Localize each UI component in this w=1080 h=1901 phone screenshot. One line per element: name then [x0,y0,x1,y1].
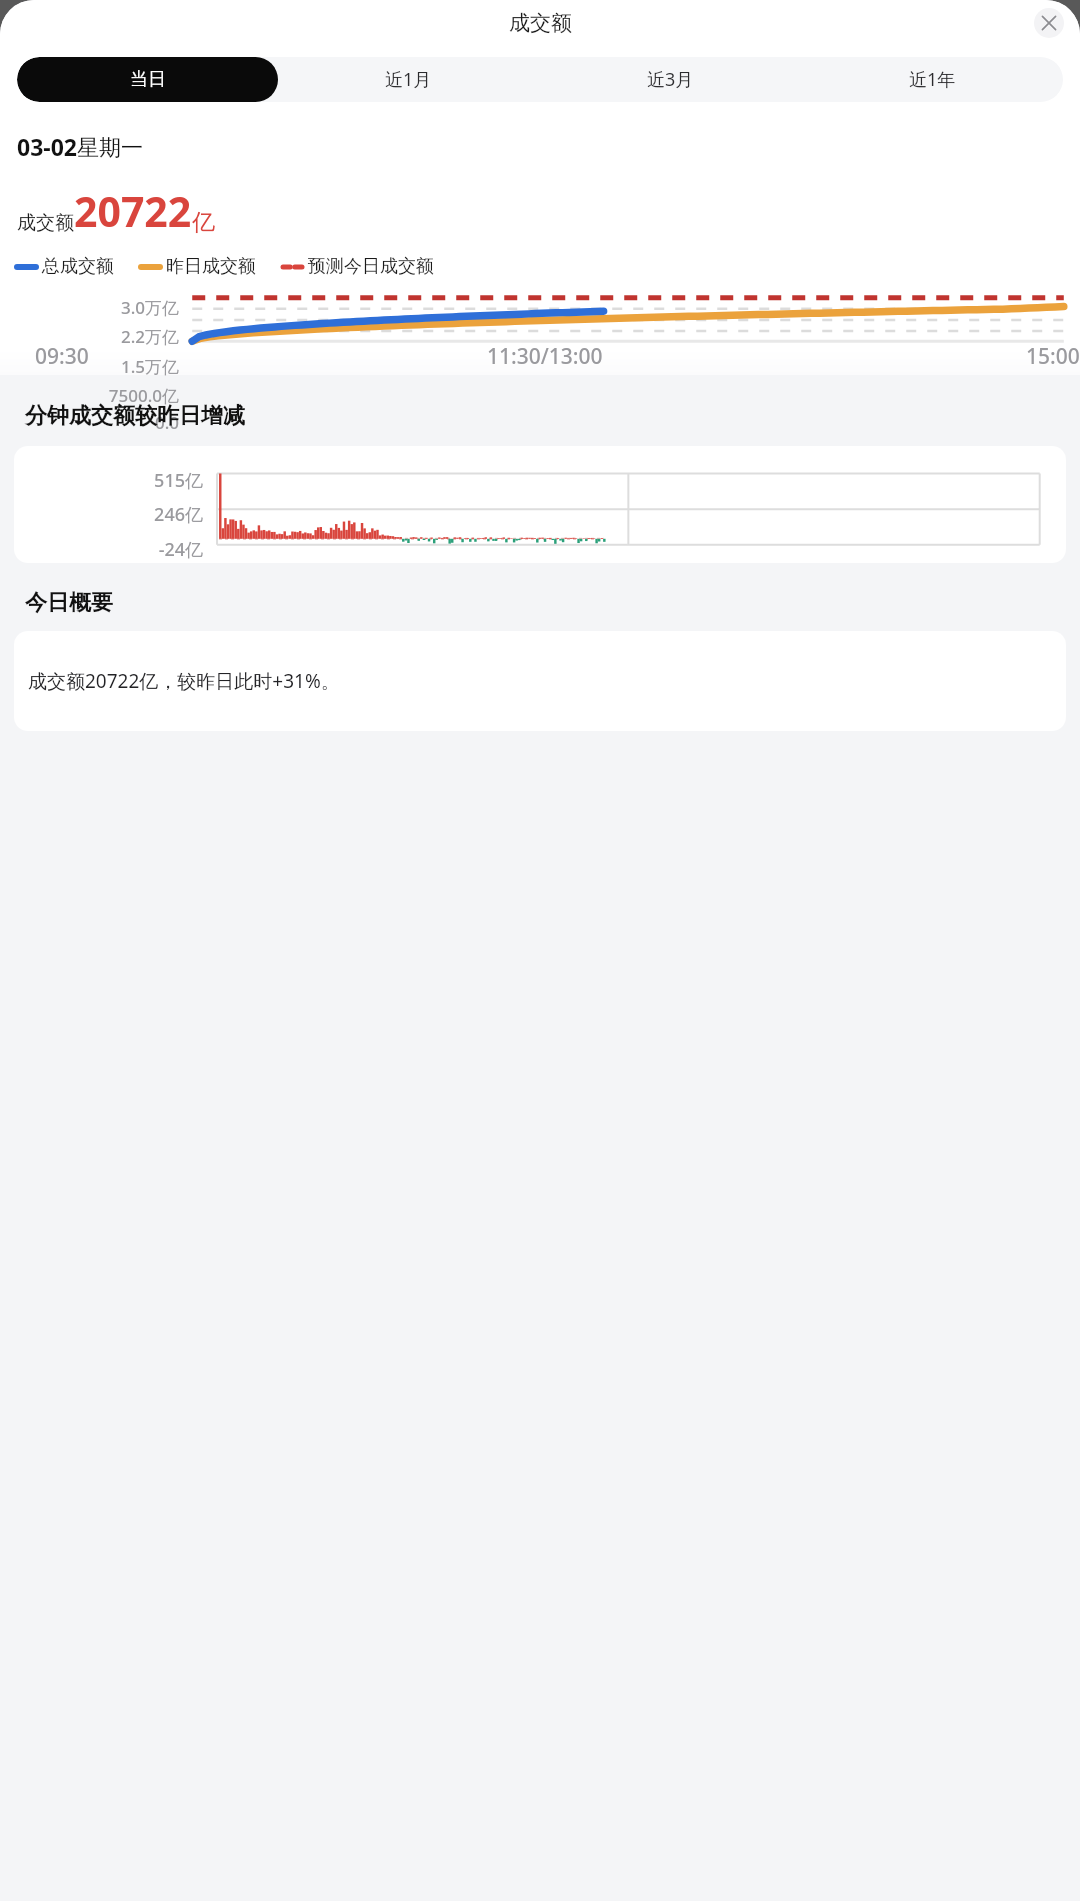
staticText: 20722 [74,183,192,239]
button[interactable]: 近1月 [278,57,539,102]
button[interactable]: 近1年 [801,57,1063,102]
staticText: 3.0万亿 [120,296,179,319]
staticText: 15:00 [1026,342,1080,371]
staticText: 11:30/13:00 [487,342,603,371]
staticText: -24亿 [158,537,203,562]
staticText: 当日 [130,68,166,91]
staticText: 分钟成交额较昨日增减 [25,402,245,430]
staticText: 总成交额 [42,255,114,278]
staticText: 昨日成交额 [166,255,256,278]
button[interactable]: 当日 [17,57,278,102]
staticText: 2.2万亿 [120,325,179,348]
staticText: 预测今日成交额 [308,255,434,278]
button[interactable]: 关闭 [1034,8,1064,38]
staticText: 今日概要 [25,589,113,617]
staticText: 星期一 [77,134,143,162]
staticText: 246亿 [154,502,203,527]
staticText: 515亿 [154,468,203,493]
button[interactable]: 近3月 [539,57,801,102]
staticText: 0.0 [154,411,179,434]
staticText: 成交额 [17,211,74,235]
staticText: 近3月 [647,67,694,92]
staticText: 近1月 [385,67,432,92]
staticText: 亿 [192,208,215,237]
staticText: 成交额 [509,10,572,36]
staticText: 09:30 [35,342,89,371]
button[interactable]: 成交额20722亿，较昨日此时+31%。 [14,631,1066,731]
staticText: 近1年 [909,67,956,92]
staticText: 1.5万亿 [120,355,179,378]
staticText: 成交额20722亿，较昨日此时+31%。 [28,668,340,694]
staticText: 7500.0亿 [108,384,179,407]
staticText: 03-02 [17,131,77,162]
